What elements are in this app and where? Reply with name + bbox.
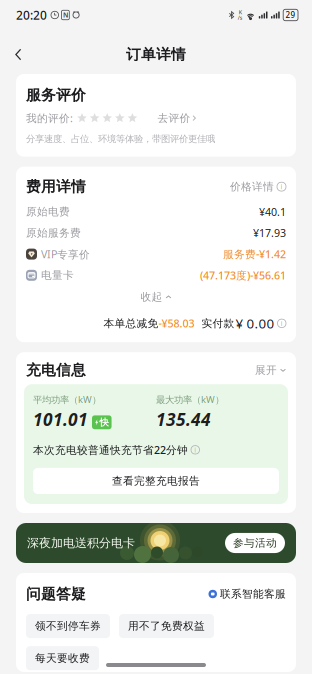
staticText: 联系智能客服 bbox=[220, 587, 286, 601]
button[interactable]: 深夜加电送积分电卡 bbox=[16, 523, 296, 563]
staticText: 充电信息 bbox=[26, 361, 86, 379]
staticText: 20:20 bbox=[16, 7, 47, 23]
button[interactable]: 联系智能客服 bbox=[208, 587, 286, 601]
staticText: 用不了免费权益 bbox=[128, 619, 205, 633]
staticText: 本单总减免 bbox=[103, 317, 158, 330]
staticText: 展开 bbox=[255, 364, 277, 377]
staticText: 每天要收费 bbox=[35, 652, 90, 665]
staticText: 我的评价: bbox=[26, 111, 73, 125]
staticText: 平均功率（kW） bbox=[33, 393, 101, 406]
staticText: (47.173度)-¥56.61 bbox=[200, 268, 286, 282]
staticText: N bbox=[63, 11, 68, 19]
staticText: /s bbox=[238, 14, 243, 21]
staticText: 135.44 bbox=[156, 408, 211, 431]
button[interactable]: 查看完整充电报告 bbox=[33, 468, 279, 494]
staticText: 原始电费 bbox=[26, 205, 70, 218]
staticText: K bbox=[239, 9, 242, 16]
button[interactable]: 领不到停车券 bbox=[26, 614, 110, 638]
button[interactable]: 展开 bbox=[255, 364, 286, 377]
staticText: ¥17.93 bbox=[253, 226, 286, 240]
staticText: 问题答疑 bbox=[26, 585, 86, 603]
button[interactable]: 收起 bbox=[140, 290, 171, 303]
staticText: VIP专享价 bbox=[41, 247, 90, 261]
staticText: 费用详情 bbox=[26, 178, 86, 196]
staticText: 实付款 bbox=[201, 317, 234, 330]
staticText: 服务费-¥1.42 bbox=[223, 247, 286, 261]
button[interactable]: 去评价 bbox=[137, 111, 196, 125]
staticText: i bbox=[281, 319, 283, 328]
staticText: 本次充电较普通快充节省22分钟 bbox=[33, 443, 188, 457]
staticText: 领不到停车券 bbox=[35, 619, 101, 633]
staticText: i bbox=[194, 445, 196, 454]
staticText: ¥ 0.00 bbox=[235, 314, 274, 332]
staticText: 价格详情 bbox=[230, 180, 274, 193]
staticText: 原始服务费 bbox=[26, 226, 81, 239]
button[interactable]: Back bbox=[6, 39, 31, 69]
button[interactable]: 每天要收费 bbox=[26, 646, 99, 670]
staticText: 收起 bbox=[140, 290, 162, 303]
button[interactable]: 用不了免费权益 bbox=[119, 614, 214, 638]
staticText: 电量卡 bbox=[41, 269, 74, 282]
staticText: 服务评价 bbox=[26, 86, 86, 104]
staticText: 去评价 bbox=[157, 111, 190, 125]
staticText: -¥58.03 bbox=[158, 316, 194, 330]
staticText: 最大功率（kW） bbox=[156, 393, 224, 406]
staticText: 29 bbox=[286, 10, 296, 20]
staticText: ¥40.1 bbox=[259, 205, 286, 219]
staticText: i bbox=[280, 182, 282, 191]
staticText: 订单详情 bbox=[126, 45, 186, 63]
staticText: 分享速度、占位、环境等体验，带图评价更佳哦 bbox=[26, 133, 215, 145]
button[interactable]: 价格详情 bbox=[230, 180, 286, 193]
staticText: 快 bbox=[100, 417, 109, 428]
staticText: 查看完整充电报告 bbox=[112, 474, 200, 487]
staticText: 参与活动 bbox=[233, 536, 277, 550]
staticText: 101.01 bbox=[33, 408, 88, 431]
staticText: 深夜加电送积分电卡 bbox=[27, 536, 135, 550]
